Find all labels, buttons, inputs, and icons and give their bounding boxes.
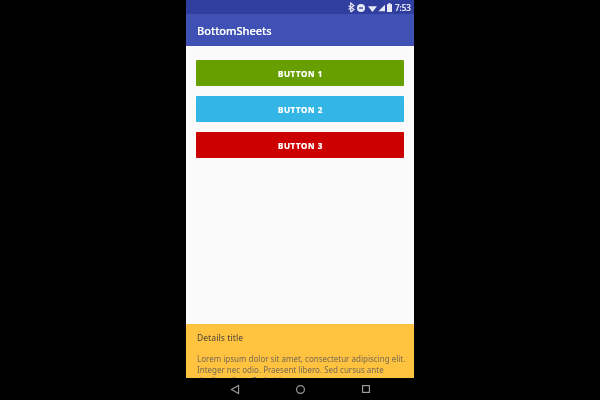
staticText: Lorem ipsum dolor sit amet, consectetur … xyxy=(197,353,406,378)
button[interactable]: Back xyxy=(218,378,252,400)
button[interactable]: BUTTON 2 xyxy=(196,96,404,122)
button[interactable]: BUTTON 3 xyxy=(196,132,404,158)
staticText: BottomSheets xyxy=(197,23,272,38)
staticText: Details title xyxy=(197,332,244,344)
button[interactable]: BUTTON 1 xyxy=(196,60,404,86)
staticText: 7:53 xyxy=(395,2,411,13)
staticText: BUTTON 1 xyxy=(278,68,323,79)
staticText: BUTTON 3 xyxy=(278,140,323,151)
button[interactable]: Home xyxy=(283,378,317,400)
staticText: BUTTON 2 xyxy=(278,104,323,115)
button[interactable]: Recent apps xyxy=(349,378,383,400)
button[interactable]: Details title xyxy=(186,324,414,378)
